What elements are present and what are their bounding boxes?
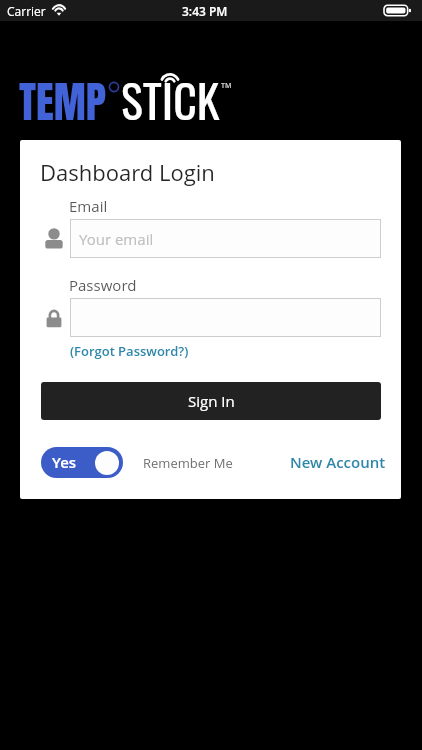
staticText: TEMP (19, 69, 107, 134)
staticText: Yes (52, 452, 77, 472)
button[interactable]: Your email (70, 219, 381, 258)
staticText: (Forgot Password?) (70, 342, 189, 360)
staticText: Carrier (7, 3, 46, 19)
staticText: TM (221, 81, 232, 91)
staticText: Password (69, 275, 137, 295)
staticText: Remember Me (143, 454, 233, 472)
staticText: Dashboard Login (40, 157, 215, 187)
button[interactable]: New Account (290, 452, 386, 472)
staticText: 3:43 PM (182, 3, 228, 19)
staticText: Email (69, 196, 108, 216)
staticText: Sign In (188, 391, 235, 411)
staticText: STICK (121, 65, 220, 133)
staticText: Your email (79, 229, 154, 249)
button[interactable]: Sign In (41, 382, 381, 420)
button[interactable]: (Forgot Password?) (70, 342, 189, 360)
button[interactable]: Password field (70, 298, 381, 337)
button[interactable]: Remember me, on (41, 447, 123, 478)
staticText: New Account (290, 452, 386, 472)
